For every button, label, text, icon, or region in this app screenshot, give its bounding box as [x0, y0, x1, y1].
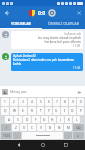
button[interactable]: Back [14, 140, 24, 150]
button[interactable]: , [13, 132, 21, 139]
button[interactable]: T [37, 107, 44, 115]
button[interactable]: 3 [19, 98, 27, 106]
staticText: Z [15, 126, 17, 130]
staticText: 5 [40, 100, 42, 104]
button[interactable]: 6 [45, 98, 52, 106]
button[interactable]: YORUMLAR [0, 19, 42, 28]
staticText: X [23, 126, 25, 130]
staticText: G [43, 118, 46, 122]
staticText: U [55, 109, 58, 113]
button[interactable]: Z [12, 124, 19, 131]
staticText: T [40, 109, 42, 113]
button[interactable]: G [41, 116, 48, 123]
staticText: M [67, 126, 70, 130]
staticText: ↵ [77, 134, 80, 138]
button[interactable]: 5 [37, 98, 44, 106]
button[interactable]: V [37, 124, 45, 131]
button[interactable]: Send [75, 88, 83, 96]
button[interactable]: O [69, 107, 76, 115]
staticText: D [26, 118, 29, 122]
staticText: B [49, 126, 52, 130]
button[interactable]: H [49, 116, 56, 123]
button[interactable]: S [14, 116, 22, 123]
button[interactable]: F [32, 116, 40, 123]
button[interactable]: R [28, 107, 36, 115]
staticText: 0:0 [38, 10, 46, 17]
staticText: Mesaj yaz [10, 89, 75, 94]
staticText: K [68, 118, 70, 122]
button[interactable]: L [73, 116, 80, 123]
staticText: L [76, 118, 78, 122]
staticText: F [35, 118, 37, 122]
staticText: 1 [4, 100, 6, 104]
staticText: ⌫ [76, 126, 81, 130]
staticText: N [58, 126, 61, 130]
button[interactable]: 2 [10, 98, 18, 106]
button[interactable]: 1 [1, 98, 9, 106]
button[interactable]: Space [22, 132, 63, 139]
button[interactable]: Q [1, 107, 9, 115]
button[interactable]: 7 [53, 98, 60, 106]
staticText: H [51, 118, 54, 122]
staticText: ⇧ [5, 126, 8, 130]
button[interactable]: Aykut Arslan42 [2, 53, 83, 71]
staticText: 4 [31, 100, 33, 104]
staticText: 9 [72, 100, 74, 104]
staticText: 3 [22, 100, 24, 104]
button[interactable]: kullanıcı adı [2, 31, 83, 49]
button[interactable]: I [61, 107, 68, 115]
button[interactable]: ↵ [73, 132, 84, 139]
button[interactable]: 9 [69, 98, 76, 106]
staticText: S [17, 118, 19, 122]
staticText: 11:08 [73, 44, 81, 48]
button[interactable]: 4 [28, 98, 36, 106]
button[interactable]: Add attachment [2, 89, 8, 95]
button[interactable]: 8 [61, 98, 68, 106]
button[interactable]: ?123 [1, 132, 12, 139]
button[interactable]: N [55, 124, 63, 131]
staticText: 0 [80, 100, 82, 104]
button[interactable]: W [10, 107, 18, 115]
button[interactable]: X [20, 124, 27, 131]
staticText: V [40, 126, 42, 130]
button[interactable]: Recents [61, 140, 71, 150]
button[interactable]: ⇧ [1, 124, 11, 131]
button[interactable]: Home [38, 140, 48, 150]
button[interactable]: Options [72, 6, 85, 19]
staticText: 6 [48, 100, 50, 104]
staticText: , [17, 134, 18, 138]
button[interactable]: Back [0, 6, 13, 19]
staticText: A [8, 118, 11, 122]
staticText: P [80, 109, 82, 113]
button[interactable]: P [77, 107, 84, 115]
staticText: 11:34 [73, 66, 81, 70]
button[interactable]: D [23, 116, 31, 123]
staticText: . [68, 134, 69, 138]
button[interactable]: B [46, 124, 54, 131]
button[interactable]: E [19, 107, 27, 115]
button[interactable]: K [65, 116, 72, 123]
staticText: ?123 [3, 134, 10, 138]
button[interactable]: A [5, 116, 13, 123]
button[interactable]: M [64, 124, 72, 131]
staticText: 2 [13, 100, 15, 104]
button[interactable]: Y [45, 107, 52, 115]
staticText: bu maç bizim olacak inşallah herkese bol… [38, 36, 81, 44]
staticText: 8 [64, 100, 66, 104]
staticText: kullanıcı adı [64, 32, 81, 36]
button[interactable]: ÖNEMLİ OLAYLAR [42, 19, 85, 28]
button[interactable]: ⌫ [73, 124, 84, 131]
staticText: E [22, 109, 24, 113]
button[interactable]: C [28, 124, 36, 131]
staticText: W [13, 109, 16, 113]
staticText: 7 [56, 100, 58, 104]
button[interactable]: U [53, 107, 60, 115]
staticText: ÖNEMLİ OLAYLAR [48, 21, 79, 26]
staticText: O [71, 109, 74, 113]
staticText: I [64, 109, 66, 113]
staticText: C [31, 126, 34, 130]
button[interactable]: 0 [77, 98, 84, 106]
button[interactable]: J [57, 116, 64, 123]
staticText: Y [48, 109, 50, 113]
